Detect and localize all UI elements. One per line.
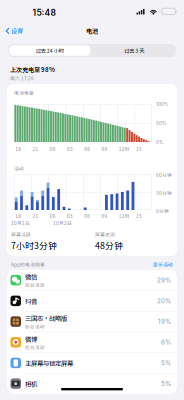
staticText: 15 <box>136 212 142 219</box>
staticText: 21 <box>32 212 38 219</box>
staticText: 12时 <box>119 145 130 152</box>
staticText: 微信 <box>25 272 37 281</box>
staticText: 18 <box>15 212 21 219</box>
staticText: 主屏幕与锁定屏幕 <box>25 358 73 368</box>
staticText: 显示活动 <box>153 261 173 268</box>
staticText: 10月2日 <box>53 219 72 226</box>
staticText: 微博 <box>25 334 37 343</box>
staticText: 过去 3 天 <box>124 47 144 54</box>
staticText: 30分钟 <box>156 190 172 196</box>
staticText: 周六 17:26 <box>10 75 34 82</box>
button[interactable]: 设置 <box>0 22 27 39</box>
staticText: 18 <box>15 145 21 152</box>
staticText: 上次充电至 98% <box>10 65 55 74</box>
staticText: 6% <box>161 338 171 346</box>
staticText: 48分钟 <box>95 239 123 251</box>
button[interactable]: 相机 <box>7 373 177 394</box>
staticText: 50% <box>156 121 167 126</box>
staticText: 21 <box>32 145 38 152</box>
staticText: 12时 <box>119 212 130 219</box>
staticText: 09 <box>101 145 107 152</box>
button[interactable]: 微博 <box>7 332 177 353</box>
button[interactable]: 过去 3 天 <box>94 45 175 56</box>
staticText: 电池电量 <box>14 89 34 96</box>
staticText: 00 <box>50 212 56 219</box>
staticText: 相机 <box>25 379 37 388</box>
staticText: 过去 24 小时 <box>36 47 64 54</box>
staticText: 100% <box>156 102 169 107</box>
button[interactable]: 三国志·战略版 <box>7 311 177 332</box>
staticText: 5% <box>161 380 171 387</box>
button[interactable]: 过去 24 小时 <box>9 45 90 56</box>
staticText: 19% <box>158 318 171 325</box>
staticText: 后台活动 <box>25 282 45 288</box>
staticText: 后台活动 <box>25 323 45 330</box>
staticText: 20% <box>157 297 171 305</box>
staticText: 0% <box>156 140 164 145</box>
button[interactable]: 显示活动 <box>150 259 176 270</box>
staticText: 09 <box>101 212 107 219</box>
staticText: 抖音 <box>25 296 37 305</box>
staticText: 03 <box>67 212 73 219</box>
staticText: 屏幕活跃 <box>11 231 31 238</box>
staticText: 15 <box>136 145 142 152</box>
staticText: 03 <box>67 145 73 152</box>
staticText: 三国志·战略版 <box>25 313 67 323</box>
staticText: 后台活动 <box>25 344 45 350</box>
button[interactable]: 抖音 <box>7 291 177 311</box>
staticText: 设置 <box>11 26 23 35</box>
button[interactable]: 微信 <box>7 270 177 291</box>
staticText: 电池 <box>86 26 98 35</box>
staticText: 15:48 <box>32 7 55 18</box>
staticText: 06 <box>84 145 90 152</box>
staticText: 0分钟 <box>156 208 169 214</box>
staticText: 10月1日 <box>11 219 30 226</box>
staticText: 屏幕关闭 <box>95 231 115 238</box>
staticText: 00 <box>50 145 56 152</box>
staticText: App的电池用量 <box>11 261 45 268</box>
staticText: 60分钟 <box>156 172 172 178</box>
staticText: 5% <box>161 359 171 367</box>
staticText: 06 <box>84 212 90 219</box>
staticText: 29% <box>157 276 171 284</box>
button[interactable]: 主屏幕与锁定屏幕 <box>7 353 177 373</box>
staticText: 活动 <box>14 165 24 172</box>
staticText: 7小时3分钟 <box>11 239 57 251</box>
